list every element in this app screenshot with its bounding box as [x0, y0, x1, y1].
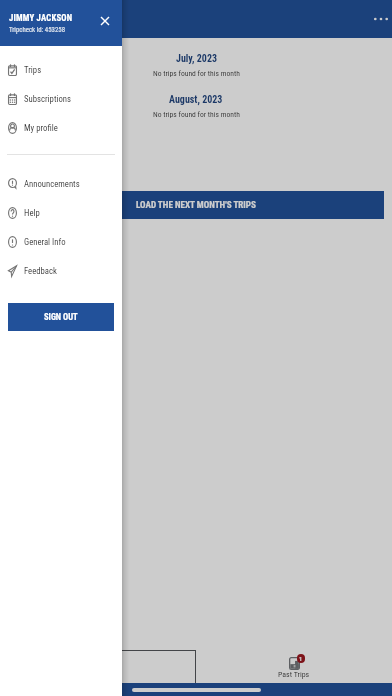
- button[interactable]: Announcements: [0, 169, 122, 198]
- button[interactable]: General Info: [0, 227, 122, 256]
- staticText: General Info: [24, 237, 66, 247]
- button[interactable]: Close drawer: [94, 10, 116, 32]
- staticText: No trips found for this month: [153, 69, 240, 78]
- button[interactable]: My profile: [0, 113, 122, 142]
- staticText: Feedback: [24, 266, 57, 276]
- button[interactable]: Trips: [0, 650, 196, 683]
- staticText: Trips: [24, 65, 42, 75]
- staticText: August, 2023: [169, 94, 223, 106]
- button[interactable]: LOAD THE NEXT MONTH'S TRIPS: [8, 191, 384, 219]
- staticText: 1: [299, 655, 303, 662]
- button[interactable]: Help: [0, 198, 122, 227]
- staticText: SIGN OUT: [44, 312, 78, 322]
- button[interactable]: Feedback: [0, 256, 122, 285]
- button[interactable]: SIGN OUT: [8, 303, 114, 331]
- staticText: Announcements: [24, 179, 80, 189]
- staticText: My profile: [24, 123, 58, 133]
- staticText: Past Trips: [278, 670, 310, 679]
- staticText: JIMMY JACKSON: [9, 13, 73, 23]
- staticText: Help: [24, 208, 40, 218]
- staticText: Tripcheck Id: 453258: [9, 26, 65, 34]
- staticText: Subscriptions: [24, 94, 71, 104]
- button[interactable]: Subscriptions: [0, 84, 122, 113]
- button[interactable]: Trips: [0, 55, 122, 84]
- button[interactable]: More options: [367, 5, 392, 33]
- staticText: LOAD THE NEXT MONTH'S TRIPS: [136, 200, 256, 211]
- staticText: July, 2023: [176, 53, 217, 65]
- staticText: No trips found for this month: [153, 110, 240, 119]
- button[interactable]: 1: [196, 650, 392, 683]
